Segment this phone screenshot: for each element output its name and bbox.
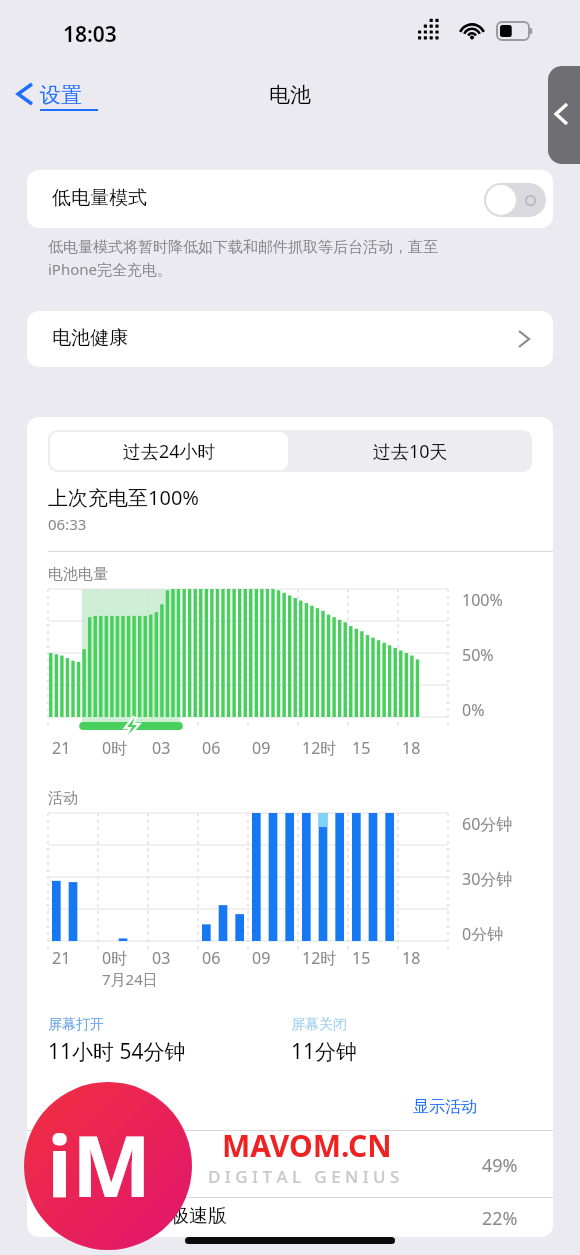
staticText: 12时	[302, 947, 337, 969]
staticText: D I G I T A L G E N I U S	[208, 1165, 400, 1188]
staticText: 22%	[482, 1206, 518, 1231]
staticText: 18	[402, 947, 421, 969]
staticText: 15	[352, 947, 371, 969]
staticText: 7月24日	[102, 969, 158, 989]
staticText: 0分钟	[462, 923, 504, 941]
staticText: 50%	[462, 644, 494, 666]
staticText: 06	[202, 737, 221, 759]
staticText: 过去10天	[373, 439, 448, 464]
staticText: 100%	[462, 589, 503, 611]
staticText: 电池	[0, 82, 580, 108]
button[interactable]: 显示活动	[407, 1095, 483, 1119]
staticText: 显示活动	[413, 1097, 477, 1117]
staticText: 11小时 54分钟	[48, 1037, 186, 1066]
staticText: iM	[47, 1107, 152, 1221]
staticText: 18:03	[63, 20, 117, 49]
staticText: 低电量模式	[52, 186, 147, 210]
staticText: 03	[152, 947, 171, 969]
staticText: 06	[202, 947, 221, 969]
staticText: 09	[252, 947, 271, 969]
staticText: 屏幕关闭	[291, 1016, 347, 1034]
button[interactable]: 低电量模式开关	[484, 183, 546, 217]
staticText: 活动	[48, 789, 78, 808]
staticText: 过去24小时	[123, 439, 216, 464]
staticText: 21	[52, 737, 71, 759]
staticText: 12时	[302, 737, 337, 759]
button[interactable]: 低电量模式	[27, 170, 553, 228]
button[interactable]: 49%	[27, 1131, 553, 1197]
staticText: 11分钟	[291, 1037, 358, 1066]
staticText: 09	[252, 737, 271, 759]
staticText: 低电量模式将暂时降低如下载和邮件抓取等后台活动，直至 iPhone完全充电。	[48, 238, 548, 280]
staticText: 0%	[462, 699, 485, 717]
staticText: 18	[402, 737, 421, 759]
staticText: 屏幕打开	[48, 1016, 104, 1034]
staticText: 15	[352, 737, 371, 759]
staticText: 电池健康	[52, 326, 128, 350]
staticText: 电池电量	[48, 565, 108, 584]
button[interactable]: 设置	[10, 72, 68, 116]
staticText: 0时	[102, 947, 128, 969]
staticText: 21	[52, 947, 71, 969]
staticText: 03	[152, 737, 171, 759]
staticText: 49%	[482, 1153, 518, 1178]
other: 展开	[519, 331, 529, 347]
staticText: 极速版	[170, 1204, 227, 1228]
staticText: 30分钟	[462, 868, 513, 890]
staticText: MAVOM.CN	[222, 1125, 392, 1166]
button[interactable]: 电池健康	[27, 311, 553, 367]
staticText: 06:33	[48, 514, 87, 534]
staticText: 60分钟	[462, 813, 513, 835]
button[interactable]: 极速版	[27, 1198, 553, 1237]
staticText: 设置	[40, 82, 82, 108]
button[interactable]: 返回	[548, 66, 580, 164]
staticText: 0时	[102, 737, 128, 759]
staticText: 上次充电至100%	[48, 484, 199, 511]
button[interactable]: 过去10天	[290, 432, 530, 470]
button[interactable]: 过去24小时	[50, 432, 288, 470]
